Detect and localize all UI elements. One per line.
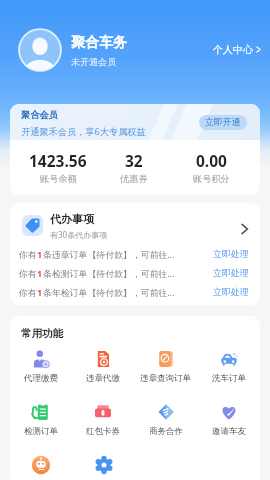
button[interactable]: 违章查询订单 [134,349,197,384]
button[interactable]: 1423.56 [10,150,106,185]
button[interactable]: 违章代缴 [72,349,134,384]
button[interactable]: 个人中心 [209,40,266,59]
staticText: 32 [125,150,143,171]
staticText: 0.00 [196,150,227,171]
staticText: 有30条代办事项 [50,229,108,240]
staticText: 账号余额 [40,173,77,185]
staticText: 1 [37,248,43,260]
button[interactable]: 设置 [72,455,135,475]
staticText: 条检测订单【待付款】，可前往... [43,267,175,279]
button[interactable]: 立即开通 [199,115,247,130]
button[interactable]: 0.00 [162,150,260,185]
staticText: 违章查询订单 [140,373,191,384]
staticText: 立即处理 [213,267,249,278]
staticText: 洗车订单 [212,373,246,384]
staticText: 1 [37,267,43,279]
button[interactable]: 检测订单 [10,402,72,437]
staticText: 开通聚禾会员，享6大专属权益 [21,125,146,138]
staticText: 账号积分 [193,173,230,185]
staticText: 聚合车务 [71,34,127,52]
staticText: 常用功能 [21,327,63,340]
button[interactable]: 客服 [10,455,72,475]
button[interactable]: 立即处理 [213,286,249,297]
button[interactable]: 邀请车友 [197,402,260,437]
staticText: 条年检订单【待付款】，可前往... [43,286,175,298]
button[interactable]: 立即处理 [213,267,249,278]
staticText: 邀请车友 [212,426,246,437]
button[interactable]: 洗车订单 [197,349,260,384]
button[interactable]: 你有 [10,244,260,263]
button[interactable]: 你有 [10,263,260,282]
button[interactable]: 立即处理 [213,248,249,259]
button[interactable]: 商务合作 [134,402,197,437]
staticText: 违章代缴 [86,373,120,384]
staticText: 立即开通 [205,117,241,128]
button[interactable]: 代办事项 [10,205,260,246]
staticText: 代办事项 [50,212,94,226]
staticText: 1423.56 [29,150,87,171]
staticText: 1 [37,286,43,298]
staticText: 个人中心 [213,43,253,56]
staticText: 聚合会员 [21,109,58,121]
staticText: 代理缴费 [24,373,58,384]
button[interactable]: 你有 [10,282,260,301]
button[interactable]: 聚合会员 [10,104,260,140]
staticText: 立即处理 [213,286,249,297]
staticText: 商务合作 [149,426,183,437]
staticText: 你有 [19,287,37,298]
button[interactable]: 代理缴费 [10,349,72,384]
staticText: 优惠券 [120,173,148,185]
staticText: 你有 [19,268,37,279]
staticText: 你有 [19,249,37,260]
button[interactable]: 32 [106,150,162,185]
staticText: 条违章订单【待付款】，可前往... [43,248,175,260]
staticText: 未开通会员 [71,56,116,67]
staticText: 检测订单 [24,426,58,437]
staticText: 红包卡券 [86,426,120,437]
button[interactable]: 红包卡券 [72,402,134,437]
staticText: 立即处理 [213,248,249,259]
